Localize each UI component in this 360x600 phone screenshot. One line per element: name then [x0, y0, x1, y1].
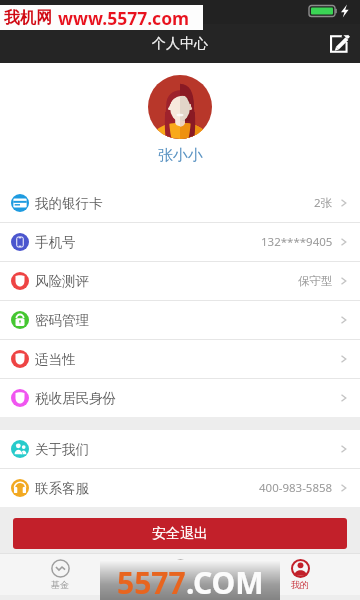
- staticText: 我机网: [4, 8, 52, 28]
- staticText: 保守型: [298, 274, 333, 288]
- staticText: 密码管理: [35, 312, 89, 329]
- staticText: 理财: [171, 579, 189, 590]
- staticText: 5577: [117, 562, 186, 600]
- staticText: 基金: [51, 579, 69, 590]
- staticText: .COM: [186, 562, 264, 600]
- staticText: 手机号: [35, 234, 76, 251]
- button[interactable]: Edit profile: [325, 29, 355, 59]
- staticText: 风险测评: [35, 273, 89, 290]
- staticText: 个人中心: [152, 35, 208, 53]
- staticText: 400-983-5858: [259, 480, 333, 496]
- button[interactable]: 风险测评: [0, 262, 360, 300]
- staticText: 张小小: [158, 146, 203, 165]
- staticText: 132****9405: [261, 234, 333, 250]
- button[interactable]: 关于我们: [0, 430, 360, 468]
- button[interactable]: 适当性: [0, 340, 360, 378]
- staticText: 安全退出: [152, 525, 208, 543]
- staticText: 联系客服: [35, 480, 89, 497]
- button[interactable]: 联系客服: [0, 469, 360, 507]
- button[interactable]: 税收居民身份: [0, 379, 360, 417]
- staticText: 我的: [291, 579, 309, 590]
- staticText: 税收居民身份: [35, 390, 116, 407]
- button[interactable]: 基金: [0, 554, 120, 595]
- button[interactable]: 安全退出: [13, 518, 347, 549]
- button[interactable]: 理财: [120, 554, 240, 595]
- staticText: 关于我们: [35, 441, 89, 458]
- staticText: 我的银行卡: [35, 195, 103, 212]
- staticText: 适当性: [35, 351, 76, 368]
- button[interactable]: 手机号: [0, 223, 360, 261]
- button[interactable]: 我的: [240, 554, 360, 595]
- staticText: 2张: [314, 195, 333, 211]
- staticText: www.5577.com: [58, 6, 190, 30]
- button[interactable]: 我的银行卡: [0, 184, 360, 222]
- button[interactable]: 密码管理: [0, 301, 360, 339]
